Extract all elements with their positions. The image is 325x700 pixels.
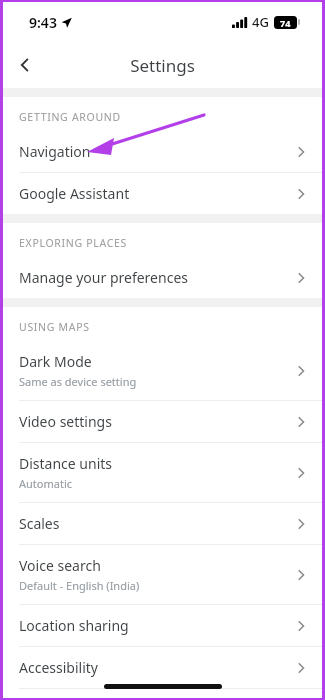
button[interactable]: Scales <box>3 503 322 545</box>
staticText: Navigation <box>19 142 91 161</box>
button[interactable]: Accessibility <box>3 647 322 689</box>
button[interactable]: Google Assistant <box>3 173 322 214</box>
staticText: Accessibility <box>19 658 98 677</box>
staticText: Distance units <box>19 454 113 473</box>
staticText: Video settings <box>19 412 112 431</box>
button[interactable]: Location sharing <box>3 605 322 647</box>
staticText: USING MAPS <box>19 320 90 334</box>
staticText: Automatic <box>19 476 72 491</box>
staticText: Google Assistant <box>19 184 130 203</box>
staticText: Location sharing <box>19 616 129 635</box>
staticText: Settings <box>130 54 195 77</box>
button[interactable]: Navigation <box>3 131 322 173</box>
staticText: 74 <box>280 17 291 29</box>
staticText: Manage your preferences <box>19 268 188 287</box>
button[interactable]: Distance units <box>3 443 322 503</box>
staticText: Same as device setting <box>19 374 137 389</box>
staticText: Default - English (India) <box>19 578 140 593</box>
button[interactable]: Voice search <box>3 545 322 605</box>
staticText: Voice search <box>19 556 101 575</box>
staticText: EXPLORING PLACES <box>19 236 128 250</box>
staticText: GETTING AROUND <box>19 110 121 124</box>
staticText: 4G <box>252 13 269 31</box>
staticText: 9:43 <box>29 13 57 32</box>
staticText: Dark Mode <box>19 352 92 371</box>
staticText: Scales <box>19 514 60 533</box>
button[interactable]: Manage your preferences <box>3 257 322 298</box>
button[interactable]: Video settings <box>3 401 322 443</box>
button[interactable]: Back <box>3 43 47 87</box>
button[interactable]: Dark Mode <box>3 341 322 401</box>
